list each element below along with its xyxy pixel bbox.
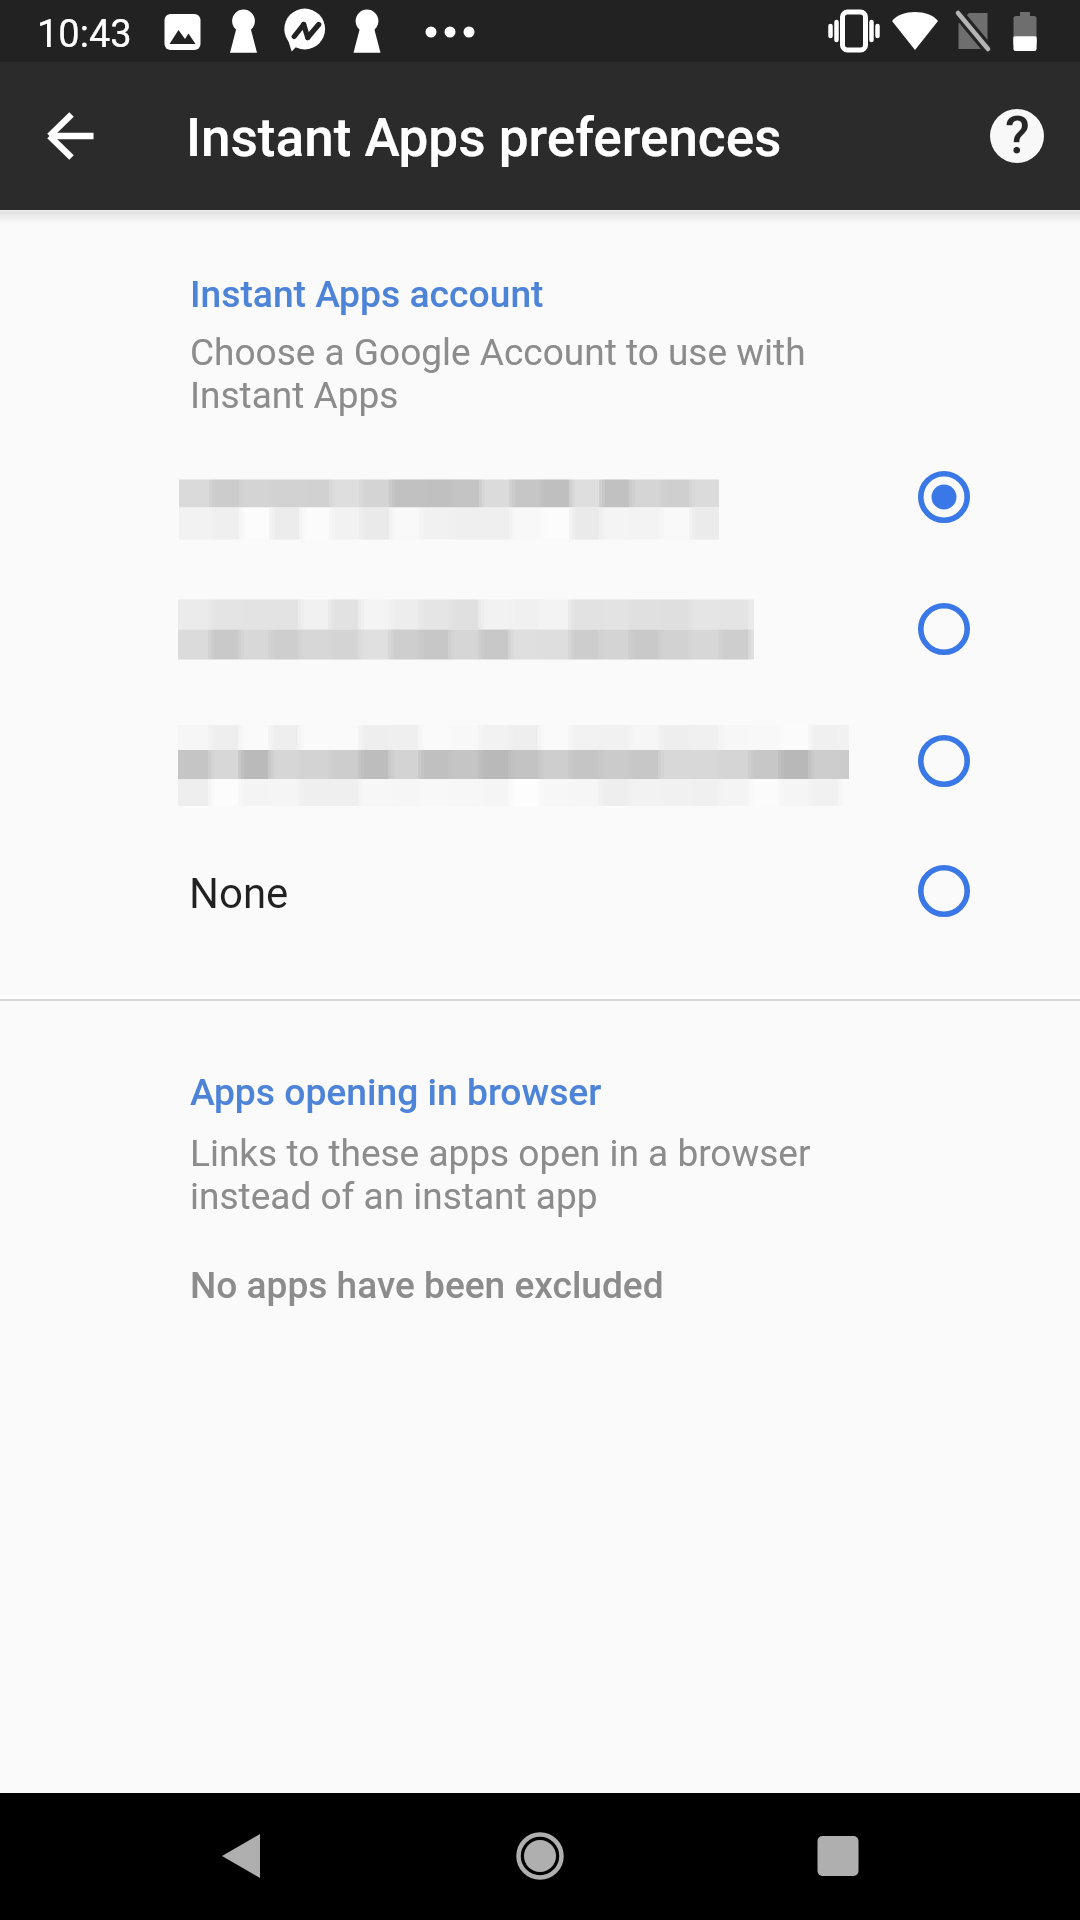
staticText: No apps have been excluded	[190, 1264, 664, 1307]
button[interactable]: Not selected	[915, 600, 973, 658]
button[interactable]: None	[0, 825, 1080, 957]
staticText: Instant Apps preferences	[186, 107, 782, 169]
staticText: Instant Apps account	[190, 272, 544, 316]
staticText: Choose a Google Account to use with Inst…	[190, 331, 806, 417]
staticText: Links to these apps open in a browser in…	[190, 1132, 811, 1218]
button[interactable]: Not selected	[0, 695, 1080, 827]
button[interactable]: Selected	[915, 468, 973, 526]
staticText: 10:43	[37, 12, 132, 57]
button[interactable]: Help	[973, 92, 1061, 180]
button[interactable]: Recent apps	[783, 1801, 893, 1911]
button[interactable]: Navigate up	[26, 90, 118, 182]
staticText: ?	[1005, 109, 1030, 160]
button[interactable]: Not selected	[0, 563, 1080, 695]
button[interactable]: Not selected	[915, 732, 973, 790]
button[interactable]: Back	[186, 1801, 296, 1911]
staticText: None	[189, 869, 289, 918]
staticText: Apps opening in browser	[190, 1070, 602, 1114]
button[interactable]: Home	[485, 1801, 595, 1911]
button[interactable]: Selected	[0, 431, 1080, 563]
button[interactable]: Not selected	[915, 862, 973, 920]
